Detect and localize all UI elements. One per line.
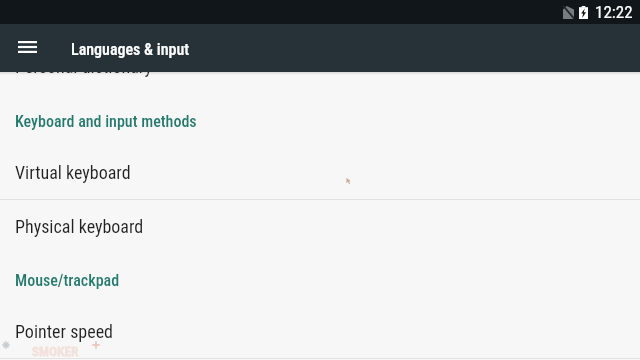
staticText: 12:22: [595, 2, 633, 22]
button[interactable]: Open navigation drawer: [0, 24, 48, 72]
staticText: Keyboard and input methods: [15, 112, 197, 131]
staticText: Pointer speed: [15, 321, 114, 342]
staticText: Virtual keyboard: [15, 162, 131, 183]
staticText: Personal dictionary: [15, 56, 152, 77]
button[interactable]: Physical keyboard: [0, 200, 640, 253]
button[interactable]: Pointer speed: [0, 305, 640, 358]
other: Battery charging: [579, 6, 588, 19]
button[interactable]: Virtual keyboard: [0, 146, 640, 199]
button[interactable]: Personal dictionary: [0, 40, 640, 93]
staticText: Languages & input: [71, 40, 190, 59]
staticText: SMOKER: [32, 344, 79, 359]
staticText: Mouse/trackpad: [15, 271, 120, 290]
staticText: Physical keyboard: [15, 216, 144, 237]
other: No SIM card: [563, 6, 574, 19]
